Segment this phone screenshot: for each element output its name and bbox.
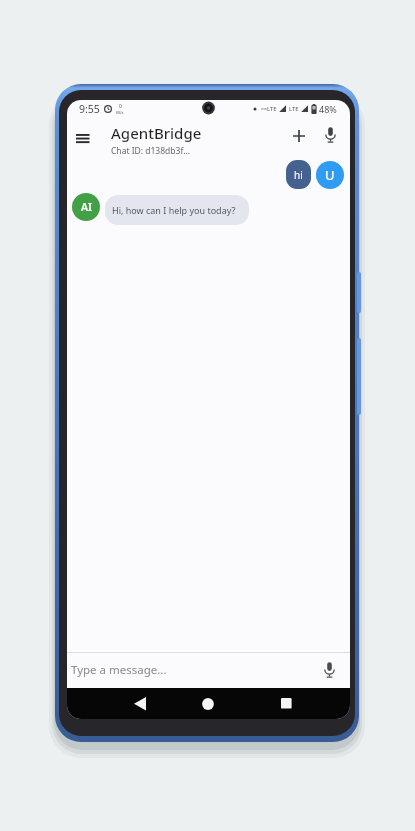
staticText: Hi, how can I help you today? — [112, 204, 236, 216]
staticText: 0 — [119, 103, 122, 110]
staticText: U — [325, 166, 335, 184]
staticText: LTE — [289, 105, 299, 113]
staticText: 9:55 — [79, 102, 100, 115]
button[interactable] — [274, 691, 299, 716]
button[interactable] — [317, 121, 343, 149]
button[interactable]: AI — [72, 193, 100, 221]
button[interactable] — [127, 691, 152, 716]
button[interactable]: hi — [286, 160, 311, 189]
button[interactable]: U — [316, 161, 344, 189]
staticText: Chat ID: d138db3f... — [111, 145, 190, 157]
staticText: AI — [81, 200, 92, 214]
button[interactable] — [195, 691, 220, 716]
button[interactable]: Type a message... — [67, 653, 350, 688]
button[interactable]: Hi, how can I help you today? — [105, 195, 249, 225]
staticText: 48% — [319, 103, 337, 115]
staticText: ᵂᴵᶠᴵ — [261, 106, 267, 112]
staticText: KB/s — [116, 110, 124, 115]
staticText: AgentBridge — [111, 123, 202, 143]
staticText: Type a message... — [71, 662, 167, 678]
staticText: hi — [294, 168, 303, 182]
button[interactable] — [285, 123, 313, 149]
staticText: LTE — [267, 105, 277, 113]
button[interactable] — [69, 125, 97, 151]
